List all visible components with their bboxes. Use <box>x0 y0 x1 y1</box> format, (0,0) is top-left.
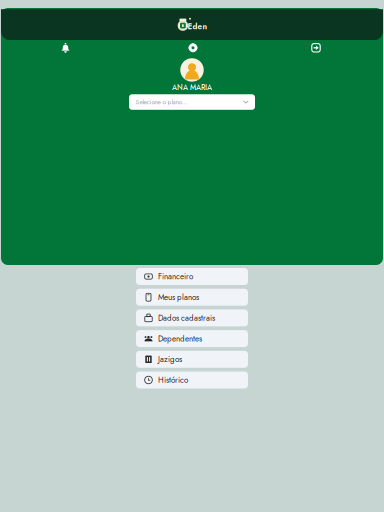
button[interactable]: Jazigos <box>136 351 248 368</box>
staticText: Financeiro <box>158 271 193 282</box>
button[interactable]: Settings <box>182 41 204 55</box>
staticText: Dependentes <box>158 333 202 344</box>
staticText: Dados cadastrais <box>158 312 215 324</box>
staticText: Selecione o plano... <box>135 97 187 107</box>
staticText: Histórico <box>158 374 188 386</box>
button[interactable]: Histórico <box>136 371 248 388</box>
staticText: ANA MARIA <box>172 82 212 93</box>
button[interactable]: Meus planos <box>136 289 248 306</box>
button[interactable]: Selecione o plano... <box>129 94 255 110</box>
button[interactable]: Log out <box>305 41 327 55</box>
staticText: Jazigos <box>158 353 182 365</box>
staticText: Meus planos <box>158 291 199 303</box>
button[interactable]: Notifications <box>54 41 76 55</box>
staticText: Eden <box>188 21 208 32</box>
button[interactable]: Dados cadastrais <box>136 309 248 326</box>
button[interactable]: Financeiro <box>136 268 248 285</box>
button[interactable]: Dependentes <box>136 330 248 347</box>
